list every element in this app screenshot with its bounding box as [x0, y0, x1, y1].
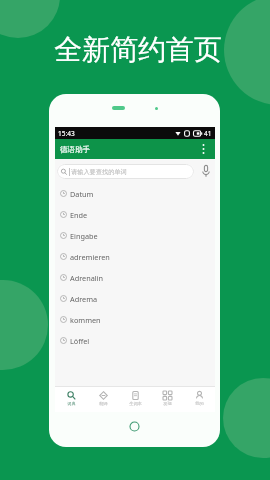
staticText: 德语助手 [60, 145, 90, 154]
button[interactable]: 请输入要查找的单词 [57, 164, 194, 179]
staticText: Ende [70, 210, 88, 220]
button[interactable]: Adrema [55, 288, 215, 309]
button[interactable]: kommen [55, 309, 215, 330]
button[interactable]: More options [195, 140, 211, 158]
button[interactable]: Löffel [55, 330, 215, 351]
button[interactable]: Ende [55, 204, 215, 225]
staticText: 全新简约首页 [54, 32, 222, 67]
staticText: 发现 [163, 401, 172, 406]
staticText: Adrenalin [70, 273, 104, 283]
button[interactable]: Adrenalin [55, 267, 215, 288]
staticText: 翻译 [99, 401, 108, 406]
staticText: Löffel [70, 336, 90, 346]
staticText: Eingabe [70, 231, 98, 241]
button[interactable]: Datum [55, 183, 215, 204]
button[interactable]: Voice search [198, 162, 213, 180]
button[interactable]: adremieren [55, 246, 215, 267]
staticText: adremieren [70, 252, 110, 262]
staticText: kommen [70, 315, 101, 325]
staticText: Datum [70, 189, 94, 199]
staticText: 请输入要查找的单词 [71, 168, 127, 176]
staticText: 生词本 [129, 401, 142, 406]
staticText: 我的 [195, 401, 204, 406]
button[interactable]: 生词本 [119, 387, 151, 412]
button[interactable]: 我的 [183, 387, 215, 412]
button[interactable]: 发现 [151, 387, 183, 412]
staticText: 41 [204, 129, 212, 138]
button[interactable]: 词典 [55, 387, 87, 412]
button[interactable]: 翻译 [87, 387, 119, 412]
staticText: 15:43 [58, 129, 75, 138]
staticText: Adrema [70, 294, 98, 304]
staticText: 词典 [67, 401, 76, 406]
button[interactable]: Eingabe [55, 225, 215, 246]
